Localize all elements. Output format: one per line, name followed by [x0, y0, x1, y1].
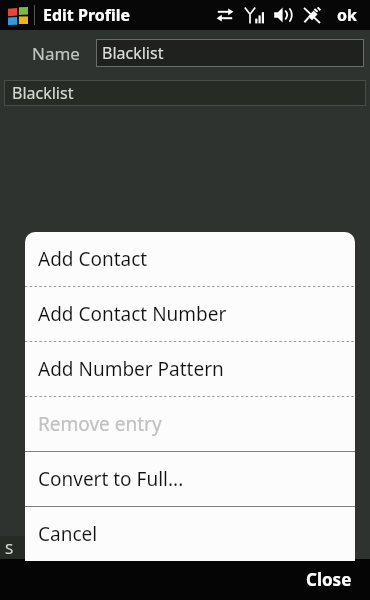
button[interactable]: Blacklist — [96, 39, 364, 67]
button[interactable]: Close — [288, 560, 370, 599]
staticText: S — [5, 538, 14, 558]
staticText: Add Number Pattern — [38, 356, 224, 382]
staticText: Add Contact — [38, 246, 148, 272]
staticText: Blacklist — [12, 82, 74, 104]
button[interactable]: Add Contact — [25, 232, 355, 286]
staticText: Convert to Full... — [38, 466, 184, 492]
button[interactable]: Convert to Full... — [25, 452, 355, 506]
staticText: Cancel — [38, 521, 98, 547]
button[interactable]: Add Number Pattern — [25, 342, 355, 396]
button[interactable]: Connectivity — [215, 5, 235, 25]
button[interactable]: Blacklist — [4, 80, 366, 106]
staticText: Close — [306, 568, 352, 591]
staticText: Edit Profile — [43, 4, 131, 26]
staticText: Remove entry — [38, 411, 162, 437]
button[interactable]: Add Contact Number — [25, 287, 355, 341]
button[interactable]: Volume — [273, 5, 293, 25]
button: Remove entry — [25, 397, 355, 451]
staticText: Blacklist — [102, 42, 164, 64]
button[interactable]: Power — [302, 5, 322, 25]
staticText: ok — [337, 4, 357, 26]
button[interactable]: Signal strength — [244, 5, 264, 25]
staticText: Add Contact Number — [38, 301, 227, 327]
button[interactable]: ok — [332, 0, 362, 30]
button[interactable]: Cancel — [25, 507, 355, 561]
staticText: Name — [32, 42, 80, 65]
